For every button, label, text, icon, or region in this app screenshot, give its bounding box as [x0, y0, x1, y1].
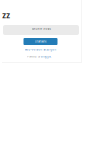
button[interactable]: Neuere Posts — [3, 25, 79, 35]
staticText: Blogger. — [41, 55, 52, 58]
staticText: Startseite — [35, 40, 46, 43]
staticText: Web-Version anzeigen — [24, 48, 56, 51]
staticText: Powered by — [27, 55, 40, 58]
button[interactable]: Startseite — [23, 38, 57, 45]
staticText: zz — [2, 11, 10, 20]
button[interactable]: Blogger. — [41, 55, 52, 58]
button[interactable]: Web-Version anzeigen — [24, 48, 56, 51]
staticText: Neuere Posts — [31, 27, 50, 31]
